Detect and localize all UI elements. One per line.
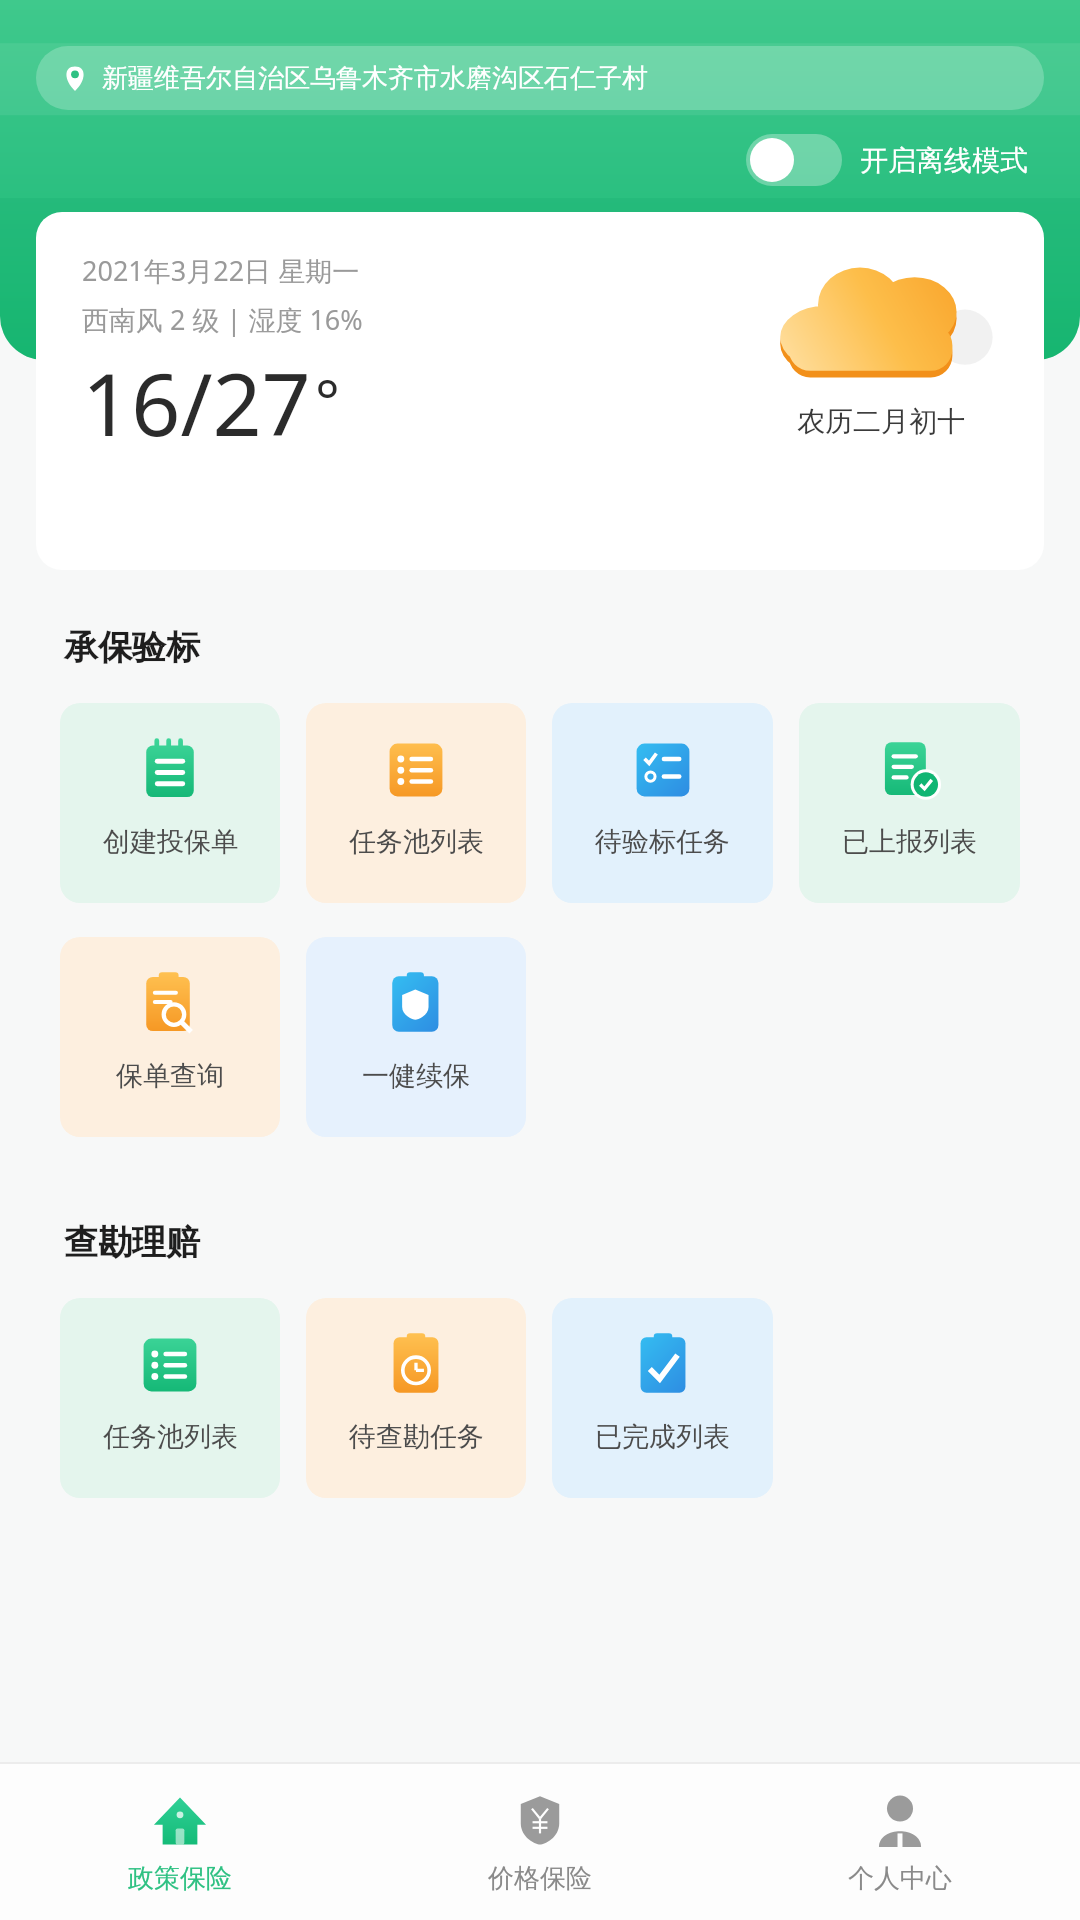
staticText: 承保验标 xyxy=(64,626,200,669)
staticText: 农历二月初十 xyxy=(797,404,965,439)
button[interactable]: 保单查询 xyxy=(60,937,280,1137)
staticText: 任务池列表 xyxy=(349,825,484,859)
staticText: 查勘理赔 xyxy=(64,1221,200,1264)
staticText: 2021年3月22日 星期一 xyxy=(82,252,360,289)
staticText: 新疆维吾尔自治区乌鲁木齐市水磨沟区石仁子村 xyxy=(102,62,648,95)
staticText: ° xyxy=(315,360,340,439)
button[interactable]: 政策保险 xyxy=(0,1764,360,1920)
staticText: 已上报列表 xyxy=(842,825,977,859)
button[interactable]: 已完成列表 xyxy=(552,1298,773,1498)
button[interactable]: 待验标任务 xyxy=(552,703,773,903)
staticText: 价格保险 xyxy=(488,1862,592,1895)
staticText: 个人中心 xyxy=(848,1862,952,1895)
button[interactable]: 开启离线模式开关 xyxy=(746,134,842,186)
button[interactable]: 任务池列表 xyxy=(60,1298,280,1498)
staticText: 西南风 2 级 | 湿度 16% xyxy=(82,301,363,338)
button[interactable]: 2021年3月22日 星期一 xyxy=(36,212,1044,570)
staticText: 政策保险 xyxy=(128,1862,232,1895)
staticText: 已完成列表 xyxy=(595,1420,730,1454)
button[interactable]: 任务池列表 xyxy=(306,703,526,903)
button[interactable]: 待查勘任务 xyxy=(306,1298,526,1498)
staticText: 任务池列表 xyxy=(103,1420,238,1454)
button[interactable]: 价格保险 xyxy=(360,1764,720,1920)
staticText: 创建投保单 xyxy=(103,825,238,859)
button[interactable]: 新疆维吾尔自治区乌鲁木齐市水磨沟区石仁子村 xyxy=(36,46,1044,110)
staticText: 待验标任务 xyxy=(595,825,730,859)
button[interactable]: 创建投保单 xyxy=(60,703,280,903)
button[interactable]: 一健续保 xyxy=(306,937,526,1137)
button[interactable]: 个人中心 xyxy=(720,1764,1080,1920)
staticText: 待查勘任务 xyxy=(349,1420,484,1454)
staticText: 16/27 xyxy=(82,344,311,461)
staticText: 开启离线模式 xyxy=(860,143,1028,178)
staticText: 一健续保 xyxy=(362,1059,470,1093)
button[interactable]: 已上报列表 xyxy=(799,703,1020,903)
staticText: 保单查询 xyxy=(116,1059,224,1093)
